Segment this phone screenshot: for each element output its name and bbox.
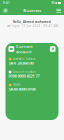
button[interactable]: Profile bbox=[3, 8, 8, 13]
button[interactable]: Current account bbox=[5, 43, 58, 120]
staticText: SAR 24,860.00 bbox=[8, 60, 33, 66]
staticText: Available balance bbox=[13, 57, 36, 61]
button[interactable]: Menu bbox=[56, 8, 61, 13]
staticText: SA44 8000 0108 bbox=[8, 86, 35, 92]
staticText: 9:41 bbox=[3, 1, 10, 5]
staticText: Last login: 12 Jun 2023 - 09:41 AM bbox=[6, 24, 57, 28]
staticText: lll bbox=[51, 1, 54, 5]
staticText: IBAN bbox=[13, 83, 20, 87]
staticText: Business bbox=[23, 8, 41, 13]
staticText: Current account bbox=[16, 44, 33, 54]
staticText: Hello, Ahmed mohamed bbox=[13, 20, 51, 24]
staticText: 0108 0000 4521 77 bbox=[8, 73, 39, 79]
staticText: Account number bbox=[13, 70, 36, 74]
